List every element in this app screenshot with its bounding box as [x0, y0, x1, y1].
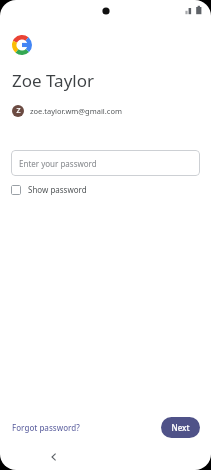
staticText: Next — [171, 422, 190, 433]
button[interactable]: Forgot password? — [10, 418, 82, 437]
staticText: Enter your password — [19, 158, 97, 169]
button[interactable]: Z — [10, 103, 124, 119]
button[interactable]: Show password — [10, 182, 93, 197]
button[interactable]: Back — [44, 447, 64, 467]
staticText: Z — [16, 106, 21, 116]
staticText: Zoe Taylor — [12, 69, 95, 92]
staticText: Forgot password? — [12, 422, 80, 433]
staticText: Show password — [28, 184, 87, 195]
button[interactable]: Enter your password — [11, 150, 200, 176]
staticText: zoe.taylor.wm@gmail.com — [30, 106, 122, 116]
button[interactable]: Next — [161, 417, 200, 438]
